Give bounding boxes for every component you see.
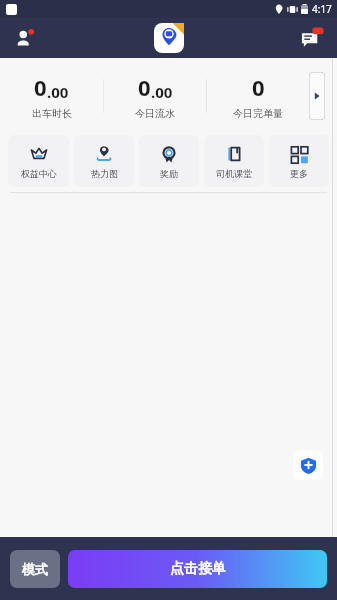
button[interactable]: Safety [293, 450, 323, 480]
staticText: 奖励 [160, 168, 178, 179]
button[interactable]: 奖励 [139, 135, 199, 187]
staticText: 0 [138, 72, 151, 102]
staticText: 今日流水 [135, 107, 175, 120]
staticText: 点击接单 [170, 560, 226, 578]
staticText: 司机课堂 [216, 168, 252, 179]
button[interactable]: 0 [207, 72, 309, 120]
staticText: 出车时长 [32, 107, 72, 120]
button[interactable]: 0 [104, 72, 206, 120]
staticText: 今日完单量 [233, 107, 283, 120]
button[interactable]: 更多 [269, 135, 329, 187]
staticText: 更多 [290, 168, 308, 179]
staticText: .00 [151, 82, 173, 102]
button[interactable]: 点击接单 [68, 550, 327, 588]
staticText: 模式 [22, 561, 48, 577]
button[interactable]: Messages [297, 23, 327, 53]
button[interactable]: 0 [0, 72, 103, 120]
staticText: .00 [47, 82, 69, 102]
staticText: 0 [34, 72, 47, 102]
button[interactable]: 权益中心 [8, 135, 69, 187]
staticText: 热力图 [91, 168, 118, 179]
staticText: 0 [252, 72, 265, 102]
button[interactable]: Profile [10, 23, 40, 53]
button[interactable]: Home [154, 23, 184, 53]
staticText: 权益中心 [21, 168, 57, 179]
button[interactable]: 热力图 [74, 135, 134, 187]
button[interactable]: 司机课堂 [204, 135, 264, 187]
staticText: 4:17 [312, 2, 332, 16]
button[interactable]: More stats [309, 72, 325, 120]
button[interactable]: 模式 [10, 550, 60, 588]
